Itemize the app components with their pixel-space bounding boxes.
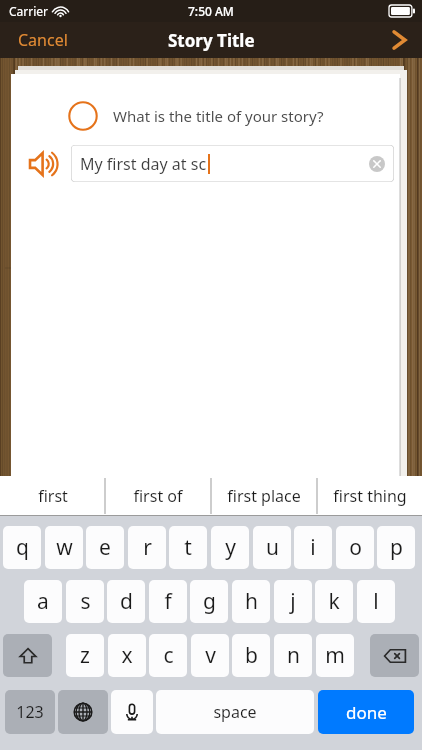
button[interactable]: x xyxy=(108,634,146,677)
staticText: first place xyxy=(227,485,301,507)
staticText: Cancel xyxy=(18,29,68,51)
button[interactable]: f xyxy=(149,580,187,623)
button[interactable]: c xyxy=(149,634,187,677)
button[interactable]: first thing xyxy=(317,476,422,516)
staticText: y xyxy=(225,533,236,562)
button[interactable]: Read aloud xyxy=(29,148,63,180)
button[interactable]: Clear text xyxy=(369,156,385,172)
staticText: 7:50 AM xyxy=(188,3,234,19)
staticText: 123 xyxy=(16,701,44,723)
button[interactable]: j xyxy=(274,580,312,623)
staticText: q xyxy=(16,533,29,562)
staticText: t xyxy=(184,533,192,562)
staticText: v xyxy=(205,641,216,670)
button[interactable]: r xyxy=(128,526,166,569)
staticText: f xyxy=(164,587,172,616)
button[interactable]: Cancel xyxy=(0,23,86,57)
staticText: x xyxy=(121,641,133,670)
button[interactable]: 123 xyxy=(5,690,55,734)
staticText: My first day at sc xyxy=(80,153,207,175)
button[interactable]: i xyxy=(294,526,332,569)
button[interactable]: z xyxy=(66,634,104,677)
staticText: space xyxy=(213,701,257,723)
staticText: k xyxy=(328,587,340,616)
button[interactable]: a xyxy=(24,580,62,623)
staticText: u xyxy=(266,533,279,562)
staticText: h xyxy=(245,587,258,616)
button[interactable]: Switch keyboard xyxy=(58,690,108,734)
button[interactable]: Shift xyxy=(3,634,52,677)
staticText: done xyxy=(346,701,387,724)
staticText: b xyxy=(245,641,258,670)
button[interactable]: u xyxy=(253,526,291,569)
button[interactable]: Backspace xyxy=(370,634,419,677)
button[interactable]: l xyxy=(357,580,395,623)
staticText: z xyxy=(80,641,90,670)
button[interactable]: Dictate xyxy=(111,690,153,734)
staticText: i xyxy=(310,533,316,562)
staticText: g xyxy=(203,587,216,616)
staticText: j xyxy=(290,587,296,616)
staticText: Story Title xyxy=(168,29,255,52)
staticText: first xyxy=(38,485,68,507)
button[interactable]: first xyxy=(0,476,105,516)
staticText: e xyxy=(99,533,111,562)
button[interactable]: k xyxy=(315,580,353,623)
button[interactable]: first place xyxy=(211,476,317,516)
staticText: o xyxy=(349,533,362,562)
button[interactable]: n xyxy=(274,634,312,677)
button[interactable]: My first day at sc xyxy=(71,145,394,182)
button[interactable]: b xyxy=(232,634,270,677)
button[interactable]: w xyxy=(45,526,83,569)
button[interactable]: h xyxy=(232,580,270,623)
staticText: r xyxy=(143,533,152,562)
staticText: m xyxy=(325,641,345,670)
button[interactable]: s xyxy=(66,580,104,623)
button[interactable]: y xyxy=(211,526,249,569)
staticText: c xyxy=(163,641,174,670)
button[interactable]: done xyxy=(318,690,414,734)
staticText: a xyxy=(37,587,49,616)
button[interactable]: space xyxy=(156,690,314,734)
staticText: What is the title of your story? xyxy=(113,106,324,126)
staticText: n xyxy=(287,641,300,670)
button[interactable]: d xyxy=(107,580,145,623)
button[interactable]: first of xyxy=(105,476,211,516)
button[interactable]: o xyxy=(336,526,374,569)
button[interactable]: q xyxy=(3,526,41,569)
button[interactable]: g xyxy=(190,580,228,623)
staticText: s xyxy=(80,587,91,616)
staticText: first thing xyxy=(333,485,407,507)
staticText: l xyxy=(373,587,379,616)
button[interactable]: t xyxy=(169,526,207,569)
staticText: w xyxy=(56,533,73,562)
staticText: first of xyxy=(133,485,183,507)
button[interactable]: Next xyxy=(377,24,422,56)
staticText: Carrier xyxy=(9,3,49,19)
button[interactable]: Help xyxy=(68,101,98,131)
staticText: d xyxy=(120,587,133,616)
button[interactable]: v xyxy=(191,634,229,677)
staticText: p xyxy=(390,533,403,562)
button[interactable]: m xyxy=(316,634,354,677)
button[interactable]: p xyxy=(377,526,415,569)
button[interactable]: e xyxy=(86,526,124,569)
